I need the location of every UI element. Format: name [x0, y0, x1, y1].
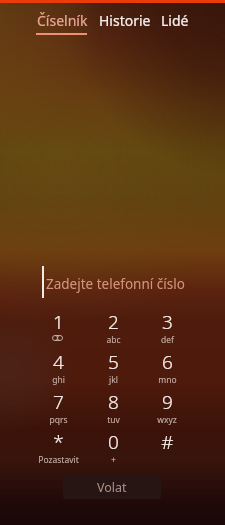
staticText: 8	[108, 389, 119, 415]
button[interactable]: Volat	[63, 475, 161, 499]
staticText: mno	[158, 374, 177, 386]
staticText: jkl	[109, 374, 118, 386]
button[interactable]: Historie	[94, 6, 154, 30]
button[interactable]: 5	[86, 349, 140, 387]
staticText: Pozastavit	[38, 454, 79, 466]
staticText: Volat	[97, 479, 127, 496]
staticText: 7	[53, 389, 64, 415]
staticText: tuv	[107, 414, 120, 426]
staticText: 2	[108, 309, 119, 335]
staticText: 1	[53, 309, 64, 335]
button[interactable]: 0	[86, 429, 140, 467]
other: Voicemail	[52, 335, 63, 341]
staticText: *	[53, 429, 64, 455]
button[interactable]: *	[31, 429, 85, 467]
button[interactable]: 2	[86, 309, 140, 347]
staticText: def	[161, 334, 174, 346]
button[interactable]: #	[140, 429, 194, 467]
button[interactable]: 7	[31, 389, 85, 427]
button[interactable]: 9	[140, 389, 194, 427]
staticText: Lidé	[161, 11, 189, 30]
staticText: pqrs	[49, 414, 68, 426]
staticText: 6	[162, 349, 173, 375]
button[interactable]: 4	[31, 349, 85, 387]
staticText: ghi	[52, 374, 65, 386]
staticText: 3	[162, 309, 173, 335]
staticText: 5	[108, 349, 119, 375]
button[interactable]: Číselník	[28, 6, 98, 34]
button[interactable]: Lidé	[156, 6, 196, 30]
button[interactable]: 6	[140, 349, 194, 387]
staticText: Historie	[99, 11, 151, 30]
button[interactable]: 3	[140, 309, 194, 347]
staticText: #	[161, 429, 174, 455]
staticText: wxyz	[157, 414, 177, 426]
staticText: abc	[106, 334, 121, 346]
staticText: 9	[162, 389, 173, 415]
staticText: Zadejte telefonní číslo	[46, 275, 185, 293]
staticText: 4	[53, 349, 64, 375]
button[interactable]: 8	[86, 389, 140, 427]
staticText: 0	[108, 429, 119, 455]
button[interactable]: 1	[31, 309, 85, 347]
staticText: +	[111, 454, 116, 466]
staticText: Číselník	[37, 11, 88, 30]
